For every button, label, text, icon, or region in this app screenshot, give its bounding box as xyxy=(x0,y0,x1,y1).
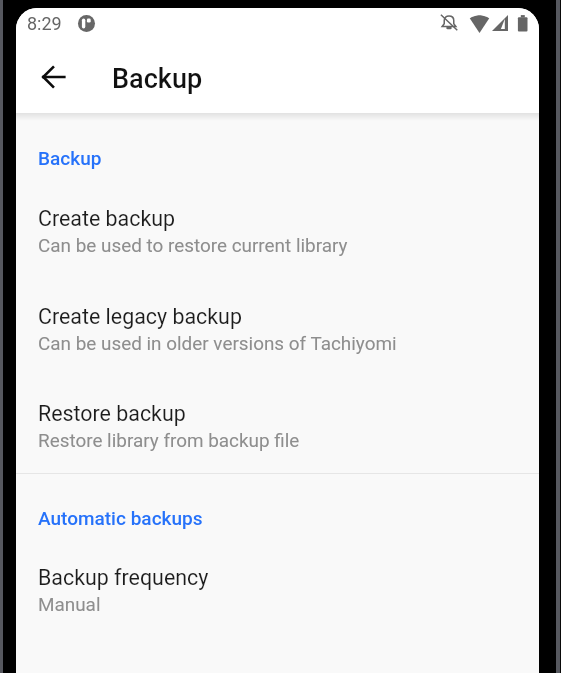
staticText: Backup xyxy=(38,147,102,169)
button[interactable]: Back xyxy=(30,53,78,101)
button[interactable]: Backup frequency xyxy=(16,549,539,627)
staticText: Can be used in older versions of Tachiyo… xyxy=(38,332,397,354)
staticText: Backup frequency xyxy=(38,565,209,590)
staticText: Create backup xyxy=(38,206,176,231)
button[interactable]: Create backup xyxy=(16,190,539,268)
button[interactable]: Create legacy backup xyxy=(16,288,539,366)
staticText: Automatic backups xyxy=(38,507,203,529)
staticText: Restore library from backup file xyxy=(38,429,300,451)
staticText: Restore backup xyxy=(38,401,186,426)
staticText: Backup xyxy=(112,63,203,95)
staticText: Create legacy backup xyxy=(38,304,242,329)
button[interactable]: Restore backup xyxy=(16,385,539,463)
staticText: Manual xyxy=(38,593,101,615)
staticText: Can be used to restore current library xyxy=(38,234,348,256)
staticText: 8:29 xyxy=(27,13,62,34)
